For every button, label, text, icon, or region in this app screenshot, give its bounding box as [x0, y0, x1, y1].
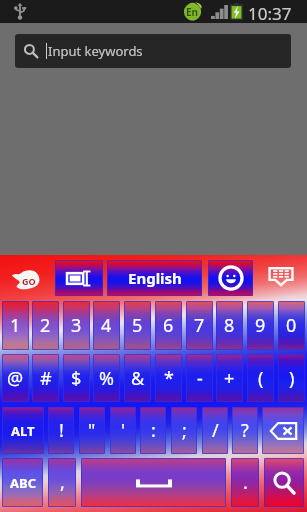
staticText: ! — [59, 418, 64, 443]
staticText: 7 — [194, 313, 205, 338]
staticText: + — [224, 366, 235, 391]
staticText: 10:37 — [248, 2, 292, 25]
other: Delete — [270, 422, 297, 440]
staticText: 9 — [255, 313, 266, 338]
button[interactable]: 4 — [93, 301, 120, 350]
staticText: * — [164, 366, 174, 391]
staticText: # — [40, 366, 52, 391]
staticText: - — [197, 366, 203, 391]
staticText: ) — [289, 366, 295, 391]
staticText: 5 — [132, 313, 143, 338]
button[interactable]: % — [93, 354, 120, 402]
button[interactable]: ; — [171, 407, 197, 454]
staticText: % — [99, 366, 114, 391]
other: Hide keyboard — [268, 263, 294, 287]
button[interactable]: ? — [232, 407, 258, 454]
button[interactable]: 8 — [216, 301, 243, 350]
staticText: ABC — [10, 474, 36, 492]
button[interactable]: Emoji — [208, 260, 253, 296]
button[interactable]: Input keywords — [15, 34, 291, 68]
staticText: " — [88, 418, 96, 443]
other: Emoji — [219, 266, 243, 290]
staticText: English — [128, 268, 182, 288]
button[interactable]: & — [124, 354, 151, 402]
button[interactable]: 0 — [278, 301, 305, 350]
button[interactable]: ) — [278, 354, 305, 402]
staticText: / — [212, 418, 219, 443]
button[interactable]: Keyboard layout — [55, 260, 103, 296]
button[interactable]: 1 — [2, 301, 29, 350]
button[interactable]: Hide keyboard — [268, 263, 294, 287]
staticText: 8 — [224, 313, 235, 338]
staticText: 3 — [71, 313, 82, 338]
staticText: & — [131, 366, 145, 391]
staticText: 0 — [286, 313, 297, 338]
button[interactable]: - — [186, 354, 213, 402]
staticText: . — [243, 470, 248, 495]
button[interactable]: Space — [81, 458, 226, 507]
button[interactable]: / — [202, 407, 228, 454]
button[interactable]: 6 — [155, 301, 182, 350]
button[interactable]: Search — [264, 458, 304, 507]
other: GO Keyboard menu — [11, 269, 41, 291]
button[interactable]: ! — [48, 407, 74, 454]
staticText: 1 — [10, 313, 21, 338]
button[interactable]: : — [140, 407, 166, 454]
staticText: ( — [258, 366, 264, 391]
button[interactable]: 7 — [186, 301, 213, 350]
button[interactable]: Delete — [262, 407, 304, 454]
button[interactable]: 2 — [32, 301, 59, 350]
button[interactable]: 5 — [124, 301, 151, 350]
staticText: 2 — [40, 313, 51, 338]
staticText: ' — [121, 418, 126, 443]
staticText: En — [186, 5, 199, 19]
staticText: GO — [22, 275, 36, 287]
button[interactable]: ( — [247, 354, 274, 402]
button[interactable]: @ — [2, 354, 29, 402]
staticText: $ — [71, 366, 82, 391]
button[interactable]: ALT — [2, 407, 44, 454]
button[interactable]: GO Keyboard menu — [11, 269, 41, 291]
other: Keyboard layout — [66, 269, 92, 288]
button[interactable]: , — [48, 458, 76, 507]
other: Space — [136, 477, 172, 489]
button[interactable]: + — [216, 354, 243, 402]
button[interactable]: " — [79, 407, 105, 454]
staticText: @ — [7, 366, 24, 391]
button[interactable]: ' — [110, 407, 136, 454]
button[interactable]: * — [155, 354, 182, 402]
staticText: ; — [182, 418, 187, 443]
button[interactable]: # — [32, 354, 59, 402]
button[interactable]: $ — [63, 354, 90, 402]
button[interactable]: . — [231, 458, 259, 507]
staticText: ALT — [11, 422, 35, 440]
button[interactable]: 3 — [63, 301, 90, 350]
button[interactable]: English — [107, 260, 202, 296]
button[interactable]: ABC — [2, 458, 43, 507]
other: Search — [272, 471, 296, 495]
staticText: 4 — [101, 313, 112, 338]
button[interactable]: 9 — [247, 301, 274, 350]
staticText: , — [60, 470, 65, 495]
staticText: ? — [241, 418, 249, 443]
staticText: : — [151, 418, 156, 443]
staticText: 6 — [163, 313, 174, 338]
staticText: Input keywords — [48, 42, 143, 60]
